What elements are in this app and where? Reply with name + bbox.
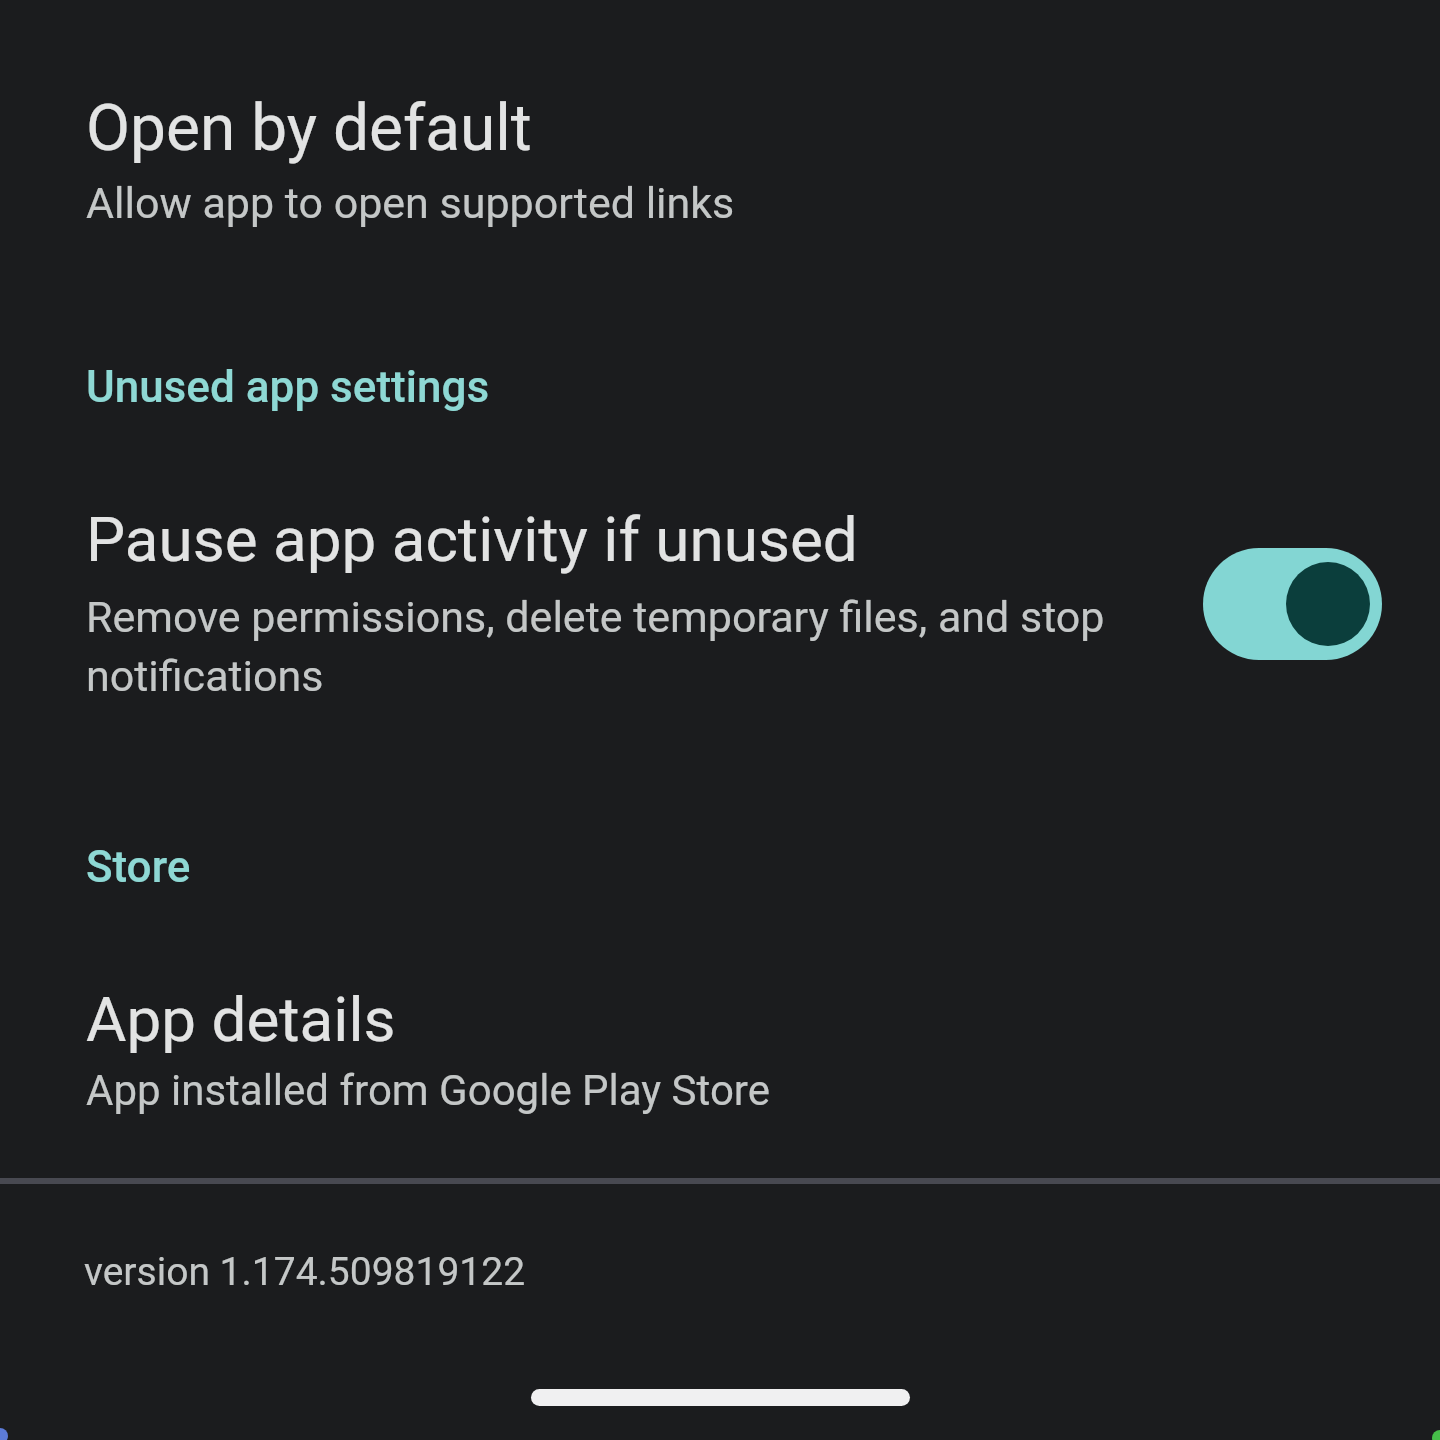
staticText: Pause app activity if unused xyxy=(86,503,858,576)
staticText: Unused app settings xyxy=(86,361,490,413)
staticText: Allow app to open supported links xyxy=(86,178,735,228)
staticText: App installed from Google Play Store xyxy=(86,1066,770,1115)
staticText: Remove permissions, delete temporary fil… xyxy=(86,592,1105,642)
staticText: notifications xyxy=(86,651,324,701)
button[interactable]: Open by default xyxy=(0,58,1440,290)
button[interactable] xyxy=(1203,548,1382,660)
staticText: Open by default xyxy=(86,91,532,166)
staticText: version 1.174.509819122 xyxy=(84,1249,526,1295)
button[interactable]: App details xyxy=(0,950,1440,1160)
button[interactable]: Pause app activity if unused xyxy=(0,460,1440,760)
staticText: App details xyxy=(86,983,396,1056)
staticText: Store xyxy=(86,841,191,893)
